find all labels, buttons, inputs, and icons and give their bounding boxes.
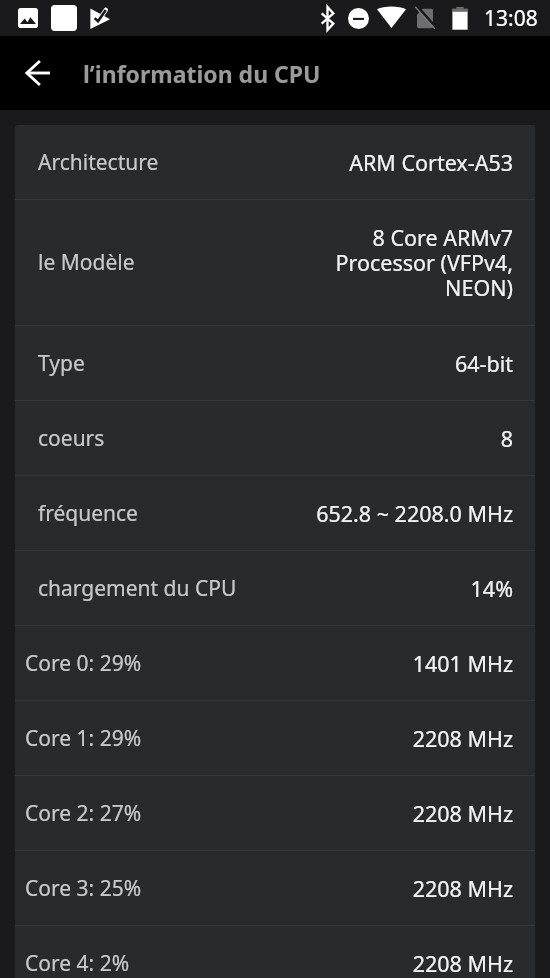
staticText: 2208 MHz [412,949,513,978]
staticText: Core 0: 29% [25,649,142,678]
staticText: chargement du CPU [38,574,237,603]
staticText: Core 2: 27% [25,799,142,828]
button[interactable]: Type [15,326,535,400]
button[interactable]: Core 0: 29% [15,626,535,700]
staticText: 1401 MHz [412,649,513,678]
staticText: 64-bit [454,349,513,378]
staticText: Core 1: 29% [25,724,142,753]
staticText: Type [38,349,85,378]
staticText: 8 Core ARMv7 Processor (VFPv4, NEON) [331,223,513,302]
staticText: 2208 MHz [412,724,513,753]
button[interactable]: Core 4: 2% [15,926,535,978]
button[interactable]: Architecture [15,125,535,199]
button[interactable]: le Modèle [15,200,535,325]
staticText: l’information du CPU [83,58,321,89]
staticText: 14% [470,574,513,603]
staticText: 652.8 ~ 2208.0 MHz [316,499,513,528]
staticText: coeurs [38,424,105,453]
button[interactable]: Core 3: 25% [15,851,535,925]
button[interactable]: fréquence [15,476,535,550]
staticText: le Modèle [38,248,135,277]
staticText: Core 3: 25% [25,874,142,903]
button[interactable]: Core 2: 27% [15,776,535,850]
staticText: fréquence [38,499,138,528]
staticText: 2208 MHz [412,874,513,903]
staticText: Architecture [38,148,159,177]
staticText: 8 [500,424,513,453]
button[interactable]: Core 1: 29% [15,701,535,775]
button[interactable]: Back [0,36,74,110]
staticText: 2208 MHz [412,799,513,828]
staticText: 13:08 [484,4,538,33]
staticText: ARM Cortex-A53 [349,148,513,177]
button[interactable]: coeurs [15,401,535,475]
staticText: Core 4: 2% [25,949,130,978]
button[interactable]: chargement du CPU [15,551,535,625]
